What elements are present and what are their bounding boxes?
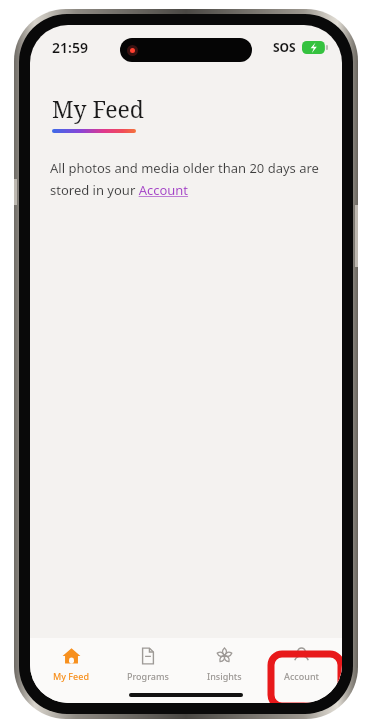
button[interactable]: Insights bbox=[189, 642, 259, 686]
staticText: My Feed bbox=[52, 93, 144, 124]
button[interactable]: Account bbox=[266, 642, 336, 686]
staticText: SOS bbox=[273, 39, 296, 55]
other: Account bbox=[292, 646, 311, 665]
staticText: All photos and media older than 20 days … bbox=[50, 159, 322, 199]
other: Insights bbox=[215, 646, 234, 665]
other: My Feed bbox=[62, 646, 81, 665]
button[interactable]: Programs bbox=[113, 643, 183, 686]
button[interactable]: All photos and media older than 20 days … bbox=[50, 159, 322, 199]
button[interactable]: My Feed bbox=[36, 642, 106, 686]
staticText: My Feed bbox=[53, 670, 90, 682]
staticText: Insights bbox=[207, 670, 242, 682]
staticText: Programs bbox=[127, 670, 169, 682]
staticText: Account bbox=[284, 670, 319, 682]
other: Programs bbox=[139, 647, 157, 665]
staticText: 21:59 bbox=[52, 38, 88, 57]
